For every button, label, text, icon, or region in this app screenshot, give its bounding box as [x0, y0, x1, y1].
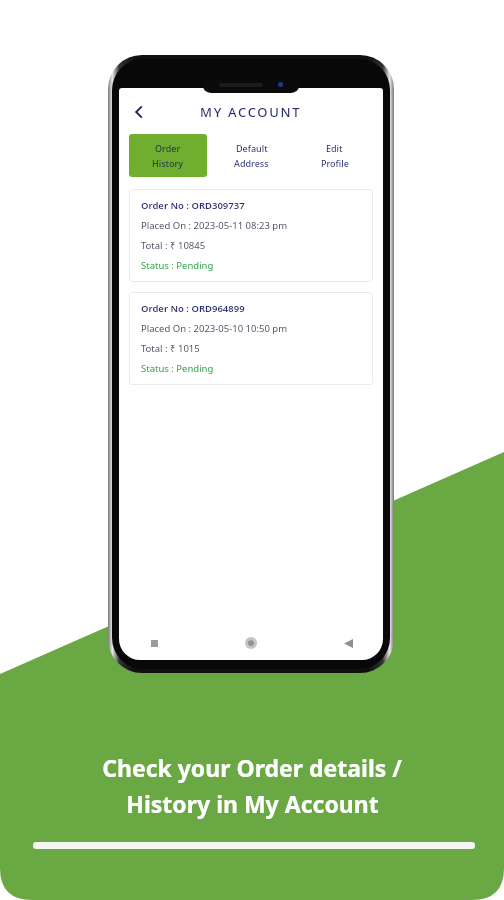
staticText: Order — [155, 142, 181, 154]
staticText: Status : Pending — [141, 362, 214, 375]
button[interactable]: Recents — [141, 630, 167, 656]
staticText: MY ACCOUNT — [200, 103, 302, 121]
staticText: Total : ₹ 10845 — [141, 239, 206, 252]
button[interactable]: Order — [129, 134, 207, 177]
staticText: Placed On : 2023-05-10 10:50 pm — [141, 322, 288, 335]
button[interactable]: Back — [335, 630, 361, 656]
staticText: Order No : ORD964899 — [141, 302, 245, 315]
staticText: Default — [236, 142, 268, 154]
staticText: Status : Pending — [141, 259, 214, 272]
staticText: Placed On : 2023-05-11 08:23 pm — [141, 219, 288, 232]
staticText: Check your Order details / — [102, 752, 402, 783]
staticText: Address — [234, 157, 269, 169]
button[interactable]: Default — [213, 134, 290, 177]
staticText: History in My Account — [126, 788, 379, 819]
staticText: History — [152, 157, 184, 169]
button[interactable]: Order No : ORD309737 — [129, 189, 373, 282]
button[interactable]: Home — [238, 630, 264, 656]
staticText: Total : ₹ 1015 — [141, 342, 200, 355]
button[interactable]: Back — [126, 99, 152, 125]
staticText: Order No : ORD309737 — [141, 199, 245, 212]
button[interactable]: Edit — [296, 134, 373, 177]
staticText: Profile — [321, 157, 349, 169]
button[interactable]: Order No : ORD964899 — [129, 292, 373, 385]
staticText: Edit — [326, 142, 343, 154]
